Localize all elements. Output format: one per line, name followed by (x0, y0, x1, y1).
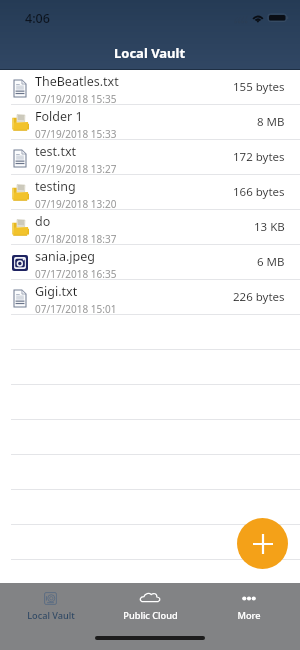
button[interactable]: do (0, 210, 300, 245)
staticText: sania.jpeg (35, 248, 95, 265)
staticText: 07/19/2018 15:33 (35, 127, 117, 141)
button[interactable]: Local Vault (3, 583, 99, 633)
button[interactable]: Gigi.txt (0, 280, 300, 315)
staticText: 07/19/2018 13:27 (35, 162, 117, 176)
staticText: 155 bytes (233, 79, 285, 95)
staticText: Folder 1 (35, 108, 83, 125)
button[interactable]: Add file (237, 518, 288, 569)
staticText: 6 MB (257, 254, 285, 270)
staticText: 07/19/2018 15:35 (35, 92, 117, 106)
staticText: 07/19/2018 13:20 (35, 197, 117, 211)
button[interactable]: test.txt (0, 140, 300, 175)
button[interactable]: Folder 1 (0, 105, 300, 140)
staticText: 172 bytes (233, 149, 285, 165)
staticText: Gigi.txt (35, 283, 78, 300)
button[interactable]: TheBeatles.txt (0, 70, 300, 105)
button[interactable]: More (201, 583, 297, 633)
staticText: Local Vault (27, 609, 75, 622)
staticText: test.txt (35, 143, 77, 160)
staticText: TheBeatles.txt (35, 73, 119, 90)
staticText: 8 MB (257, 114, 285, 130)
staticText: testing (35, 178, 76, 195)
staticText: 13 KB (254, 219, 285, 235)
staticText: 226 bytes (233, 289, 285, 305)
staticText: More (237, 609, 261, 622)
button[interactable]: testing (0, 175, 300, 210)
button[interactable]: Public Cloud (102, 583, 198, 633)
staticText: 07/18/2018 18:37 (35, 232, 117, 246)
staticText: do (35, 213, 51, 230)
staticText: 166 bytes (233, 184, 285, 200)
staticText: 4:06 (25, 10, 50, 27)
staticText: 07/17/2018 16:35 (35, 267, 117, 281)
button[interactable]: sania.jpeg (0, 245, 300, 280)
staticText: Local Vault (114, 44, 186, 62)
staticText: 07/17/2018 15:01 (35, 302, 117, 316)
staticText: Public Cloud (123, 609, 178, 622)
